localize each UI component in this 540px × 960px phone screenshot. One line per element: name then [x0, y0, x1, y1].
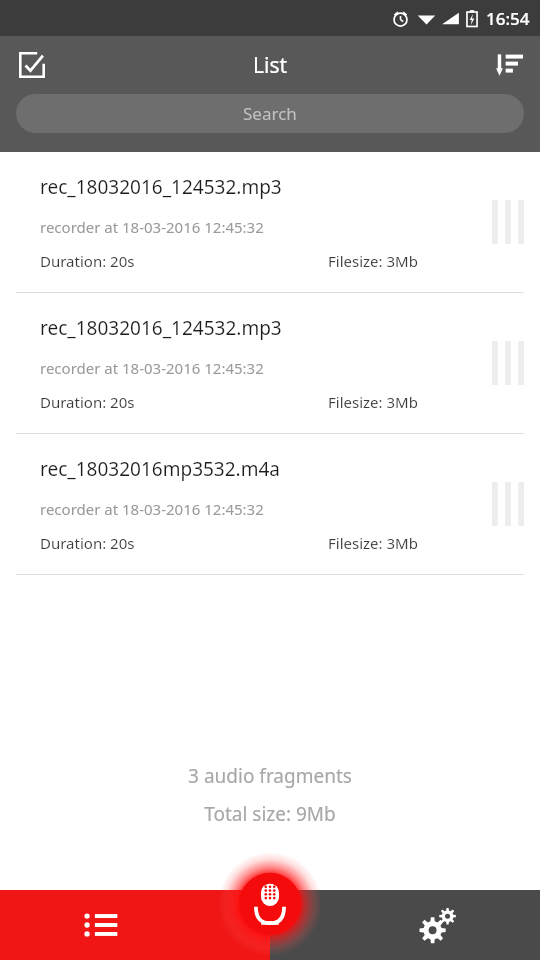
- button[interactable]: Settings: [270, 890, 540, 960]
- staticText: Filesize: 3Mb: [328, 533, 418, 553]
- button[interactable]: List: [0, 890, 270, 960]
- button[interactable]: Sort: [486, 42, 532, 88]
- staticText: 16:54: [486, 7, 530, 30]
- button[interactable]: Search: [16, 94, 524, 133]
- staticText: Filesize: 3Mb: [328, 392, 418, 412]
- staticText: recorder at 18-03-2016 12:45:32: [40, 217, 264, 237]
- button[interactable]: rec_18032016_124532.mp3: [0, 293, 540, 434]
- staticText: Duration: 20s: [40, 392, 135, 412]
- staticText: Duration: 20s: [40, 533, 135, 553]
- staticText: Duration: 20s: [40, 251, 135, 271]
- staticText: recorder at 18-03-2016 12:45:32: [40, 499, 264, 519]
- staticText: rec_18032016_124532.mp3: [40, 174, 282, 200]
- button[interactable]: rec_18032016_124532.mp3: [0, 152, 540, 293]
- staticText: recorder at 18-03-2016 12:45:32: [40, 358, 264, 378]
- staticText: 3 audio fragments: [188, 763, 352, 789]
- button[interactable]: rec_18032016mp3532.m4a: [0, 434, 540, 575]
- button[interactable]: Record: [218, 852, 322, 956]
- button[interactable]: Select all: [10, 43, 54, 87]
- staticText: rec_18032016_124532.mp3: [40, 315, 282, 341]
- staticText: Search: [243, 102, 297, 125]
- staticText: Filesize: 3Mb: [328, 251, 418, 271]
- staticText: rec_18032016mp3532.m4a: [40, 456, 280, 482]
- staticText: List: [253, 51, 288, 80]
- staticText: Total size: 9Mb: [204, 801, 336, 827]
